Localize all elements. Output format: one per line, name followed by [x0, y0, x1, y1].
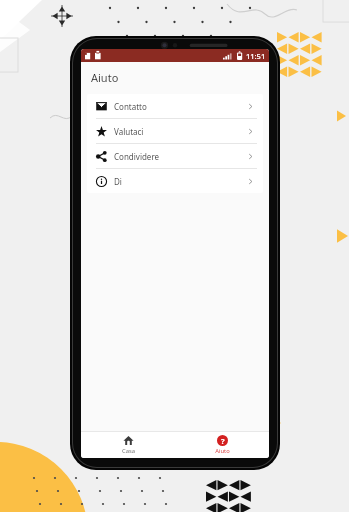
button[interactable]: Condividere: [87, 144, 263, 169]
button[interactable]: Contatto: [87, 94, 263, 119]
button[interactable]: ?: [175, 432, 269, 458]
button[interactable]: Valutaci: [87, 119, 263, 144]
staticText: Casa: [122, 447, 135, 455]
button[interactable]: Di: [87, 169, 263, 193]
staticText: Di: [114, 176, 122, 187]
staticText: Valutaci: [114, 126, 144, 137]
staticText: Aiuto: [215, 447, 230, 455]
staticText: 11:51: [246, 51, 266, 61]
button[interactable]: Casa: [81, 432, 175, 458]
staticText: Aiuto: [91, 70, 119, 85]
staticText: Contatto: [114, 101, 147, 112]
staticText: ?: [221, 436, 225, 446]
staticText: Condividere: [114, 151, 160, 162]
